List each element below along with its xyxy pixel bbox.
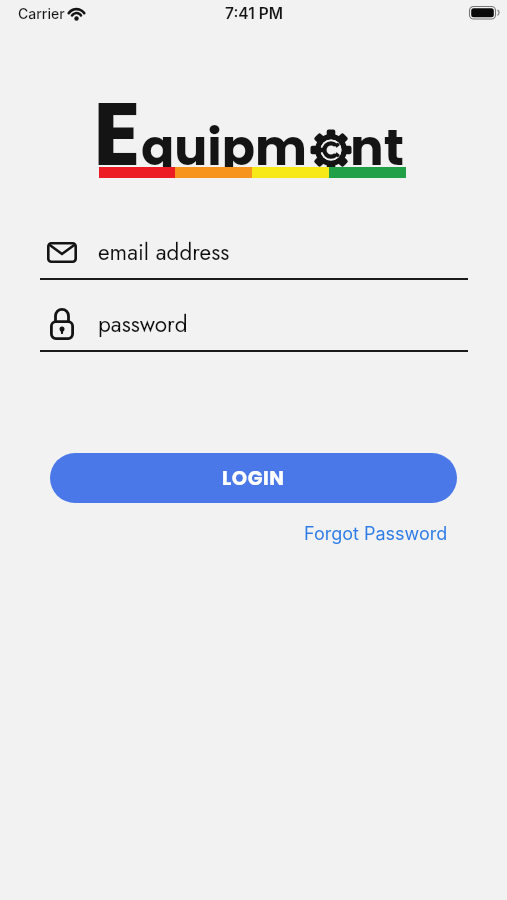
staticText: email address [98, 236, 230, 269]
button[interactable]: email address [40, 232, 468, 272]
staticText: password [98, 308, 188, 341]
button[interactable]: Forgot Password [304, 523, 448, 545]
staticText: Carrier [18, 5, 65, 22]
staticText: quipm [141, 114, 307, 183]
staticText: nt [350, 113, 404, 183]
staticText: LOGIN [222, 465, 285, 492]
staticText: E [93, 73, 141, 196]
staticText: 7:41 PM [225, 4, 283, 23]
button[interactable]: LOGIN [50, 453, 457, 503]
button[interactable]: password [40, 304, 468, 344]
staticText: Forgot Password [304, 523, 448, 545]
